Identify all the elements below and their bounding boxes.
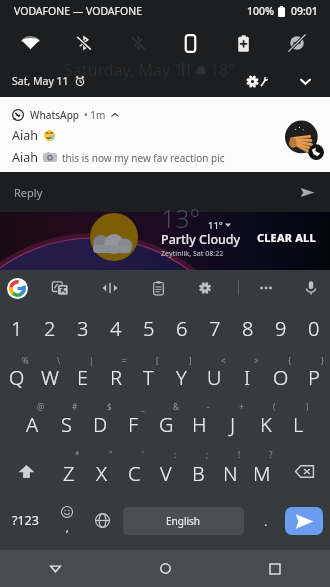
staticText: & <box>173 401 179 412</box>
button[interactable]: ?123 <box>0 496 50 545</box>
button[interactable]: * <box>52 446 85 496</box>
button[interactable]: Translate <box>47 275 73 301</box>
button[interactable]: ] <box>165 352 198 398</box>
button[interactable]: Shift <box>0 446 52 496</box>
button[interactable]: . <box>247 496 285 545</box>
button[interactable]: Recent apps <box>220 550 330 587</box>
staticText: Partly Cloudy <box>161 231 241 248</box>
staticText: E <box>77 364 89 391</box>
button[interactable]: $ <box>83 398 117 446</box>
button[interactable]: - <box>183 398 216 446</box>
button[interactable]: _ <box>117 398 150 446</box>
staticText: C <box>128 460 141 487</box>
staticText: K <box>260 411 272 438</box>
staticText: N <box>223 460 238 487</box>
staticText: \ <box>57 355 60 366</box>
button[interactable]: Wifi <box>3 22 57 64</box>
button[interactable]: Home <box>110 550 220 587</box>
button[interactable]: : <box>150 446 182 496</box>
button[interactable]: ) <box>282 398 315 446</box>
button[interactable]: + <box>216 398 249 446</box>
button[interactable]: \ <box>33 352 66 398</box>
staticText: " <box>109 449 113 460</box>
button[interactable]: Expand <box>292 68 318 94</box>
staticText: M <box>253 460 271 487</box>
staticText: I <box>244 364 251 391</box>
button[interactable]: ' <box>118 446 150 496</box>
staticText: 09:01 <box>291 4 318 18</box>
staticText: % <box>22 355 29 366</box>
button[interactable]: Google search <box>4 275 30 301</box>
button[interactable]: Send <box>285 507 323 535</box>
button[interactable]: ; <box>182 446 214 496</box>
button[interactable]: Emoji <box>50 496 84 545</box>
staticText: Saturday, May 11 <box>64 59 193 81</box>
button[interactable]: } <box>297 352 330 398</box>
button[interactable]: = <box>99 352 132 398</box>
button[interactable]: 7 <box>198 305 231 352</box>
button[interactable]: Battery saver <box>217 22 270 64</box>
button[interactable]: < <box>198 352 231 398</box>
staticText: B <box>192 460 205 487</box>
button[interactable]: Auto rotate <box>164 22 217 64</box>
button[interactable]: # <box>49 398 83 446</box>
button[interactable]: 3 <box>66 305 99 352</box>
button[interactable]: Backspace <box>278 446 330 496</box>
button[interactable]: & <box>150 398 183 446</box>
staticText: 3 <box>77 315 89 342</box>
staticText: : <box>174 449 177 460</box>
button[interactable]: Move cursor <box>97 275 123 301</box>
staticText: _ <box>141 401 145 412</box>
button[interactable]: " <box>85 446 118 496</box>
staticText: X <box>96 460 107 487</box>
button[interactable]: ! <box>214 446 246 496</box>
button[interactable]: { <box>264 352 297 398</box>
staticText: < <box>221 355 226 366</box>
button[interactable]: | <box>66 352 99 398</box>
button[interactable]: Do not disturb <box>270 22 323 64</box>
button[interactable]: 9 <box>264 305 297 352</box>
button[interactable]: Reply <box>0 172 330 212</box>
button[interactable]: Settings <box>241 65 273 97</box>
button[interactable]: More options <box>253 275 279 301</box>
button[interactable]: CLEAR ALL <box>243 221 330 254</box>
button[interactable]: 1 <box>0 305 33 352</box>
staticText: Aiah <box>12 149 38 166</box>
button[interactable]: Bluetooth off <box>57 22 111 64</box>
staticText: 8 <box>242 315 254 342</box>
staticText: A <box>26 411 39 438</box>
button[interactable]: > <box>231 352 264 398</box>
button[interactable]: 4 <box>99 305 132 352</box>
staticText: + <box>239 401 244 412</box>
button[interactable]: 8 <box>231 305 264 352</box>
button[interactable]: 2 <box>33 305 66 352</box>
staticText: U <box>207 364 222 391</box>
staticText: [ <box>156 355 159 366</box>
button[interactable]: Clipboard <box>145 275 171 301</box>
staticText: , <box>66 521 69 535</box>
staticText: WhatsApp <box>30 108 80 122</box>
button[interactable]: Voice input <box>298 275 324 301</box>
button[interactable]: English <box>123 507 244 535</box>
button[interactable]: ? <box>246 446 278 496</box>
staticText: > <box>254 355 259 366</box>
button[interactable]: % <box>0 352 33 398</box>
staticText: 6 <box>176 315 188 342</box>
button[interactable]: [ <box>132 352 165 398</box>
staticText: ? <box>269 449 273 460</box>
staticText: V <box>160 460 172 487</box>
button[interactable]: ( <box>249 398 282 446</box>
staticText: = <box>122 355 127 366</box>
button[interactable]: WhatsApp <box>12 108 119 122</box>
button[interactable]: Keyboard settings <box>192 275 218 301</box>
staticText: 4 <box>110 315 122 342</box>
button[interactable]: Back <box>0 550 110 587</box>
staticText: Z <box>63 460 75 487</box>
button[interactable]: Change language <box>84 496 120 545</box>
button[interactable]: 6 <box>165 305 198 352</box>
staticText: . <box>264 511 268 530</box>
button[interactable]: 5 <box>132 305 165 352</box>
button[interactable]: @ <box>15 398 49 446</box>
button[interactable]: 0 <box>297 305 330 352</box>
